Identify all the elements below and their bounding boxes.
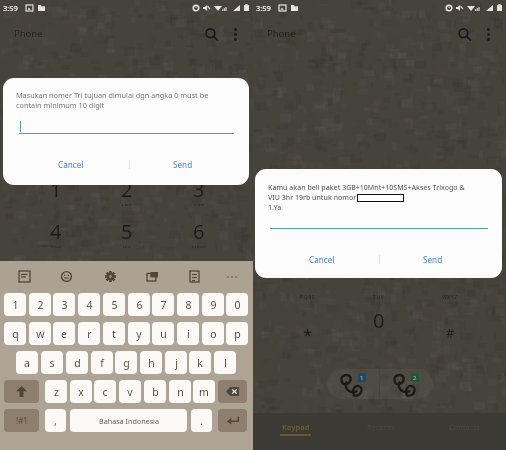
staticText: Masukan nomer Tri tujuan dimulai dgn ang… [16,90,209,110]
button[interactable]: Search [452,22,476,46]
button[interactable]: 0 [365,307,393,329]
button[interactable]: i [177,322,199,345]
button[interactable]: n [169,380,191,403]
staticText: Kamu akan beli paket 3GB+10Mnt+10SMS+Aks… [268,183,465,193]
button[interactable]: 4 [78,293,100,316]
staticText: t [112,327,116,341]
button[interactable]: 6 [128,293,150,316]
button[interactable]: Backspace [218,380,247,403]
button[interactable]: Bahasa Indonesia [70,409,187,432]
staticText: GHI [51,245,62,248]
button[interactable]: b [144,380,166,403]
button[interactable]: g [115,351,137,374]
staticText: j [175,356,178,370]
button[interactable]: Keyboard tool [141,261,163,292]
staticText: f [100,356,104,370]
button[interactable]: More options [478,24,498,44]
staticText: o [210,327,217,341]
staticText: JKL [123,245,132,248]
staticText: DEF [194,203,205,206]
button[interactable]: m [193,380,215,403]
button[interactable]: a [16,351,38,374]
staticText: 2 [413,374,417,382]
button[interactable]: k [189,351,211,374]
button[interactable]: 1 [4,293,26,316]
button[interactable]: f [91,351,113,374]
button[interactable]: l [214,351,236,374]
staticText: TUV [373,294,385,301]
button[interactable]: y [128,322,150,345]
button[interactable]: Shift [4,380,39,403]
staticText: 5 [111,298,118,312]
button[interactable]: c [94,380,116,403]
button[interactable]: * [294,323,322,341]
button[interactable]: s [41,351,63,374]
button[interactable]: Enter [218,409,247,432]
button[interactable]: Search [199,22,223,46]
button[interactable]: j [165,351,187,374]
button[interactable]: Keypad [253,413,338,450]
staticText: z [54,385,59,399]
staticText: w [36,327,45,341]
button[interactable]: !#1 [4,409,39,432]
button[interactable]: h [140,351,162,374]
button[interactable]: q [4,322,26,345]
staticText: 0 [234,298,241,312]
button[interactable]: Send [165,154,201,175]
button[interactable]: x [70,380,92,403]
button[interactable]: Call with SIM 2 [380,369,433,399]
button[interactable]: w [29,322,51,345]
staticText: v [127,385,133,399]
staticText: 1 [12,298,19,312]
staticText: Cancel [58,159,84,170]
staticText: 8 [185,298,192,312]
staticText: # [446,324,455,342]
button[interactable]: # [436,324,464,342]
button[interactable]: Keyboard tool [99,261,121,292]
button[interactable]: 5 [103,293,125,316]
button[interactable]: , [45,409,66,432]
button[interactable]: 0 [226,293,248,316]
button[interactable]: Cancel [50,154,92,175]
button[interactable]: 3 [177,176,221,206]
button[interactable]: z [45,380,67,403]
button[interactable]: 2 [29,293,51,316]
button[interactable]: r [78,322,100,345]
button[interactable]: d [66,351,88,374]
button[interactable]: Keyboard tool [183,261,205,292]
button[interactable]: More options [225,24,245,44]
button[interactable]: 2 [105,176,149,206]
staticText: Cancel [309,254,335,265]
button[interactable]: Send [415,249,451,270]
button[interactable]: Cancel [301,249,343,270]
button[interactable]: p [226,322,248,345]
button[interactable]: . [191,409,212,432]
staticText: MNO [192,245,206,248]
button[interactable]: 7 [152,293,174,316]
button[interactable]: 1 [34,176,78,206]
button[interactable]: Call with SIM 1 [327,369,379,399]
button[interactable]: 6 [177,218,221,248]
button[interactable]: 4 [34,218,78,248]
button[interactable]: Keyboard tool [13,261,35,292]
staticText: Phone [14,27,43,40]
button[interactable]: 8 [177,293,199,316]
staticText: Keypad [282,422,310,432]
staticText: 1 [360,374,364,382]
button[interactable]: e [53,322,75,345]
button[interactable]: More [223,261,241,292]
button[interactable]: t [103,322,125,345]
staticText: n [177,385,184,399]
staticText: * [303,323,313,341]
button[interactable]: u [152,322,174,345]
staticText: 5 [121,218,133,245]
button[interactable]: v [119,380,141,403]
staticText: Contacts [449,422,480,432]
button[interactable]: o [202,322,224,345]
button[interactable]: Keyboard tool [55,261,77,292]
button[interactable]: 3 [53,293,75,316]
button[interactable]: 5 [105,218,149,248]
button[interactable]: 9 [202,293,224,316]
